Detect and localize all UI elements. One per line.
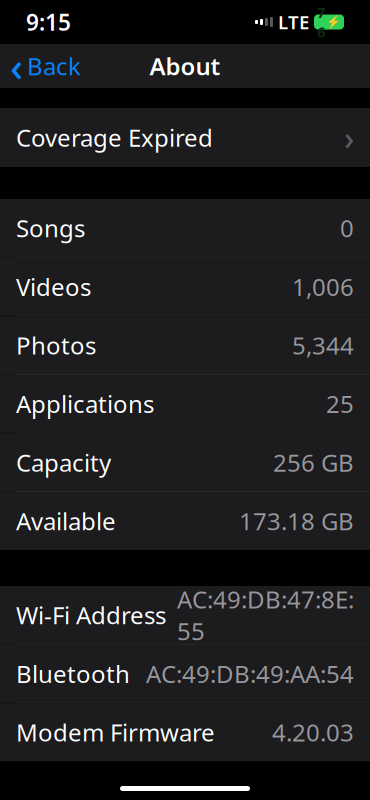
- staticText: About: [149, 50, 220, 82]
- staticText: ⚡: [326, 15, 341, 29]
- staticText: 9:15: [26, 7, 71, 37]
- staticText: Videos: [16, 271, 91, 303]
- staticText: AC:49:DB:49:AA:54: [146, 658, 354, 690]
- staticText: Applications: [16, 388, 154, 420]
- staticText: Modem Firmware: [16, 716, 215, 748]
- button[interactable]: ‹: [0, 44, 91, 88]
- staticText: 76: [317, 2, 325, 41]
- staticText: Bluetooth: [16, 658, 130, 690]
- staticText: 25: [326, 388, 354, 420]
- staticText: Songs: [16, 212, 85, 244]
- button[interactable]: Coverage Expired: [0, 108, 370, 167]
- staticText: 4.20.03: [272, 716, 354, 748]
- staticText: 173.18 GB: [239, 505, 354, 537]
- staticText: 0: [340, 212, 354, 244]
- staticText: 256 GB: [273, 446, 354, 478]
- staticText: Back: [27, 50, 81, 82]
- staticText: ›: [344, 116, 354, 159]
- staticText: 5,344: [292, 329, 354, 361]
- staticText: Available: [16, 505, 116, 537]
- staticText: AC:49:DB:47:8E:55: [177, 583, 354, 647]
- staticText: 1,006: [292, 271, 354, 303]
- staticText: Wi-Fi Address: [16, 599, 166, 631]
- staticText: Capacity: [16, 446, 111, 478]
- staticText: Photos: [16, 329, 96, 361]
- staticText: Coverage Expired: [16, 122, 213, 153]
- staticText: ‹: [10, 39, 23, 92]
- staticText: LTE: [278, 10, 309, 34]
